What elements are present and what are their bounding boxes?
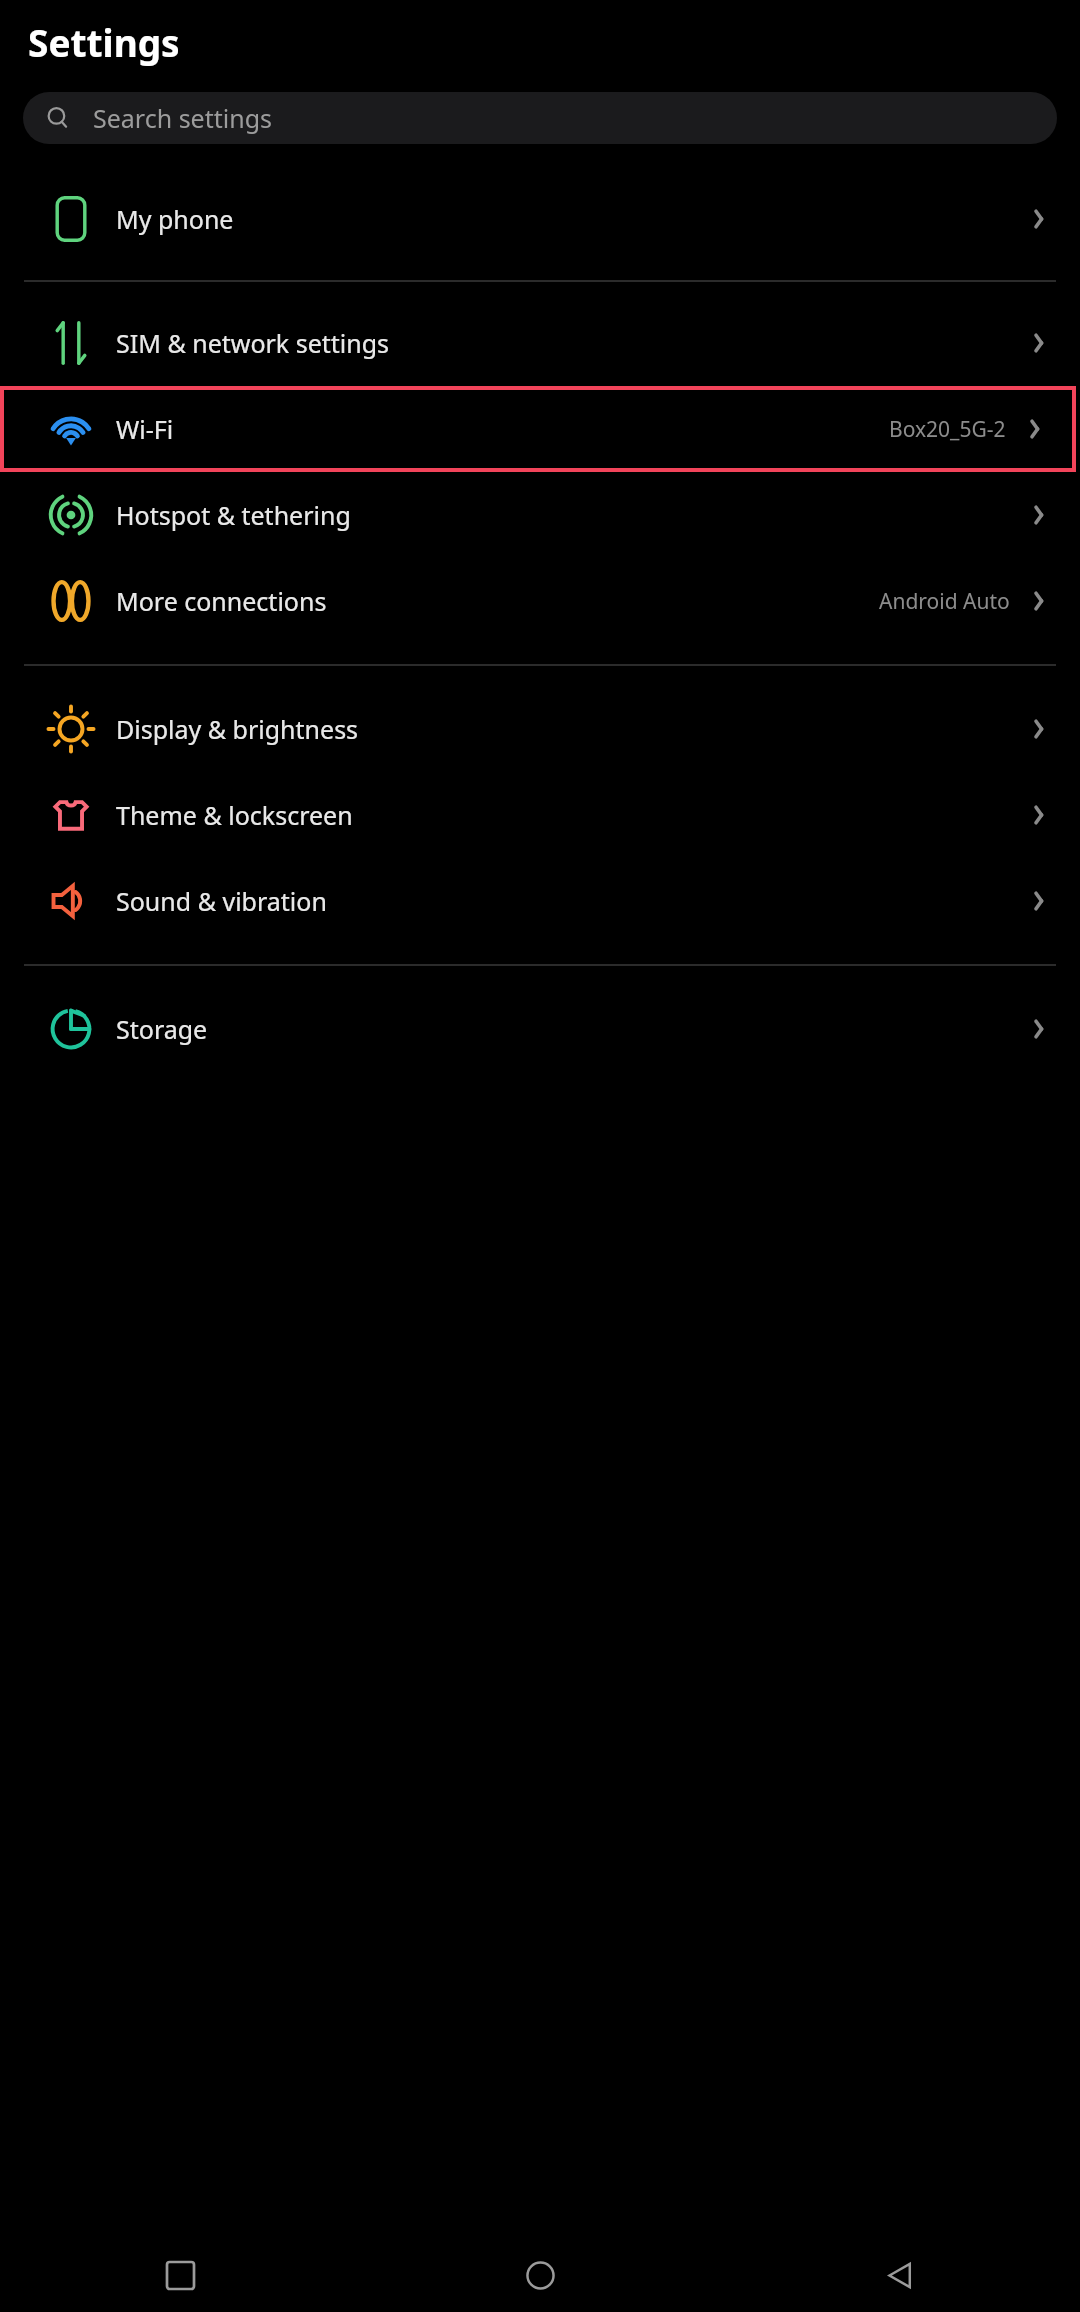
button[interactable]: Theme & lockscreen <box>0 772 1080 858</box>
staticText: Hotspot & tethering <box>116 498 351 532</box>
button[interactable]: Search <box>23 92 1057 144</box>
button[interactable]: Recents <box>0 2238 360 2312</box>
button[interactable]: Storage <box>0 986 1080 1072</box>
staticText: Theme & lockscreen <box>116 798 353 832</box>
button[interactable]: More connections <box>0 558 1080 644</box>
staticText: Android Auto <box>879 587 1010 616</box>
button[interactable]: Home <box>360 2238 720 2312</box>
staticText: Sound & vibration <box>116 884 327 918</box>
staticText: My phone <box>116 202 234 236</box>
staticText: Search settings <box>93 101 273 135</box>
button[interactable]: Back <box>720 2238 1080 2312</box>
button[interactable]: My phone <box>0 176 1080 262</box>
staticText: SIM & network settings <box>116 326 390 360</box>
staticText: Box20_5G-2 <box>889 415 1006 444</box>
button[interactable]: Wi-Fi <box>0 386 1076 472</box>
staticText: More connections <box>116 584 327 618</box>
button[interactable]: Hotspot & tethering <box>0 472 1080 558</box>
staticText: Wi-Fi <box>116 412 174 446</box>
button[interactable]: Sound & vibration <box>0 858 1080 944</box>
staticText: Settings <box>28 17 180 67</box>
button[interactable]: SIM & network settings <box>0 300 1080 386</box>
staticText: Display & brightness <box>116 712 359 746</box>
staticText: Storage <box>116 1012 208 1046</box>
button[interactable]: Display & brightness <box>0 686 1080 772</box>
other: Search <box>45 105 71 131</box>
